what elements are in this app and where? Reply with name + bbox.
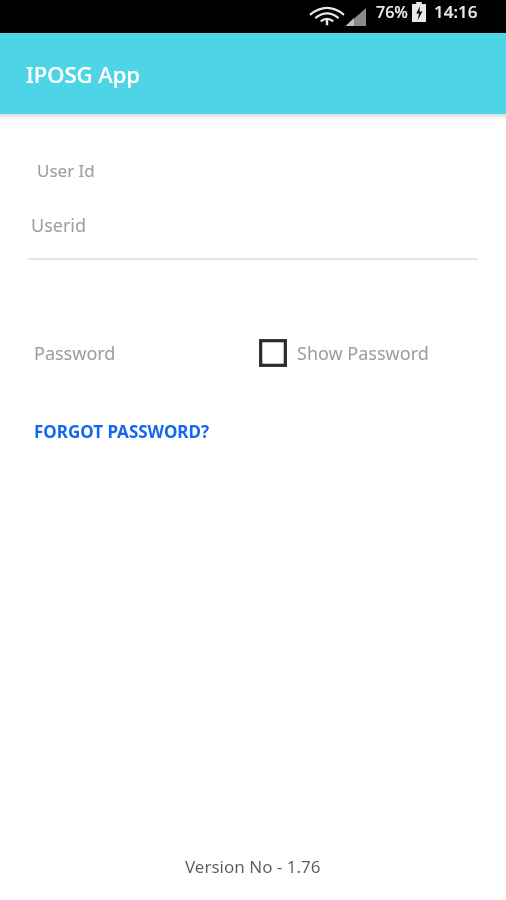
- staticText: Show Password: [297, 341, 429, 366]
- staticText: IPOSG App: [26, 59, 140, 89]
- staticText: Password: [34, 341, 116, 366]
- staticText: FORGOT PASSWORD?: [34, 420, 210, 443]
- button[interactable]: Userid: [0, 213, 506, 260]
- button[interactable]: Password: [0, 341, 259, 366]
- button[interactable]: FORGOT PASSWORD?: [34, 420, 210, 443]
- staticText: 76%: [376, 1, 408, 23]
- staticText: Userid: [31, 213, 87, 238]
- button[interactable]: Show Password: [259, 339, 429, 367]
- staticText: Version No - 1.76: [185, 855, 321, 878]
- staticText: 14:16: [434, 0, 478, 23]
- staticText: User Id: [37, 159, 95, 182]
